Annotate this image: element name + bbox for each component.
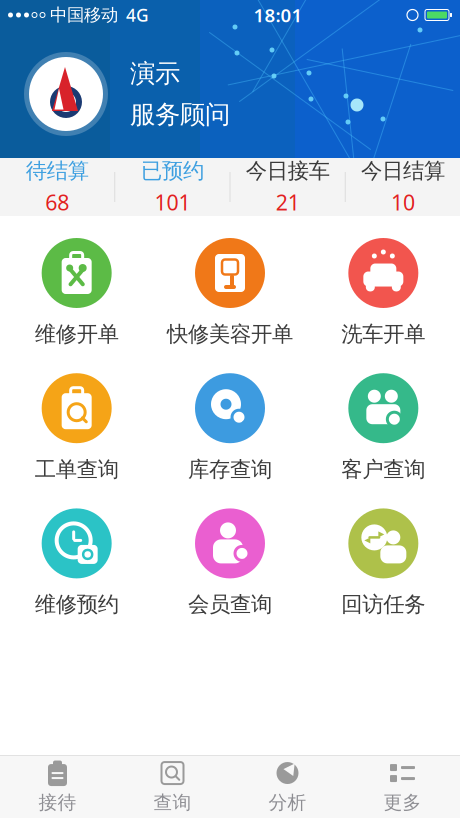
button[interactable]: 维修开单: [0, 232, 153, 353]
staticText: 库存查询: [188, 456, 272, 482]
staticText: 服务顾问: [130, 99, 230, 130]
staticText: 今日结算: [361, 158, 445, 184]
staticText: 查询: [153, 791, 191, 814]
staticText: 待结算: [26, 158, 89, 184]
button[interactable]: 今日接车: [230, 151, 345, 223]
button[interactable]: 库存查询: [153, 367, 307, 488]
staticText: 21: [276, 188, 300, 216]
button[interactable]: 已预约: [115, 151, 229, 223]
staticText: 维修开单: [35, 321, 119, 347]
button[interactable]: 会员查询: [153, 502, 307, 624]
staticText: 接待: [38, 791, 76, 814]
button[interactable]: 今日结算: [346, 151, 460, 223]
staticText: 回访任务: [341, 591, 425, 618]
staticText: 快修美容开单: [167, 321, 293, 347]
staticText: 洗车开单: [341, 321, 425, 347]
staticText: 更多: [383, 791, 421, 814]
staticText: 68: [45, 188, 69, 216]
staticText: 客户查询: [341, 456, 425, 482]
button[interactable]: 接待: [0, 754, 115, 818]
button[interactable]: 快修美容开单: [153, 232, 307, 353]
button[interactable]: 待结算: [0, 151, 114, 223]
button[interactable]: 更多: [345, 754, 460, 818]
staticText: 工单查询: [35, 456, 119, 482]
staticText: 18:01: [253, 3, 302, 27]
staticText: 会员查询: [188, 591, 272, 618]
button[interactable]: 维修预约: [0, 502, 153, 624]
staticText: 分析: [268, 791, 306, 814]
button[interactable]: 客户查询: [307, 367, 460, 488]
button[interactable]: 洗车开单: [307, 232, 460, 353]
staticText: 维修预约: [35, 591, 119, 618]
button[interactable]: 分析: [230, 754, 345, 818]
staticText: 10: [391, 188, 415, 216]
button[interactable]: 查询: [115, 754, 230, 818]
staticText: 101: [154, 188, 190, 216]
staticText: 演示: [130, 58, 180, 89]
staticText: 中国移动: [50, 4, 118, 26]
staticText: 已预约: [141, 158, 204, 184]
button[interactable]: 工单查询: [0, 367, 153, 488]
staticText: 今日接车: [246, 158, 330, 184]
button[interactable]: 回访任务: [307, 502, 460, 624]
staticText: 4G: [126, 3, 149, 26]
